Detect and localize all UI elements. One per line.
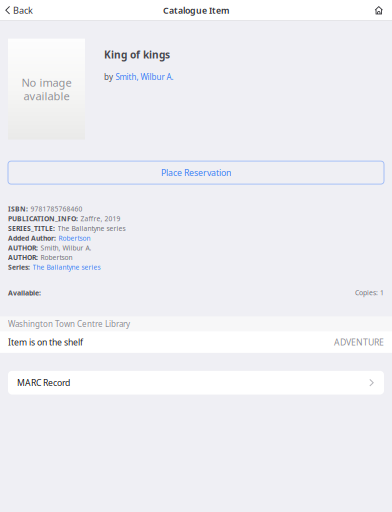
staticText: Robertson: [58, 234, 90, 243]
staticText: Catalogue Item: [163, 4, 229, 16]
staticText: by: [104, 71, 113, 82]
staticText: Smith, Wilbur A.: [40, 243, 91, 252]
staticText: PUBLICATION_INFO:: [8, 214, 78, 223]
staticText: Copies: 1: [355, 288, 384, 297]
staticText: King of kings: [104, 48, 170, 61]
staticText: Item is on the shelf: [8, 336, 83, 348]
staticText: Back: [13, 4, 33, 16]
staticText: Smith, Wilbur A.: [115, 71, 173, 82]
staticText: Added Author:: [8, 233, 56, 243]
staticText: ADVENTURE: [334, 336, 384, 348]
staticText: 9781785768460: [30, 204, 82, 214]
staticText: MARC Record: [17, 377, 70, 389]
staticText: Washington Town Centre Library: [8, 318, 130, 329]
staticText: Place Reservation: [161, 167, 231, 179]
staticText: ISBN:: [8, 204, 28, 214]
staticText: Series:: [8, 262, 30, 272]
staticText: SERIES_TITLE:: [8, 224, 55, 233]
staticText: available: [23, 88, 69, 103]
button[interactable]: Home: [369, 2, 392, 19]
staticText: AUTHOR:: [8, 243, 38, 252]
staticText: Zaffre, 2019: [80, 214, 120, 223]
staticText: AUTHOR:: [8, 253, 38, 262]
staticText: No image: [21, 75, 71, 90]
button[interactable]: Place Reservation: [0, 161, 392, 184]
button[interactable]: Back: [0, 0, 38, 20]
staticText: The Ballantyne series: [57, 224, 125, 233]
button[interactable]: Item is on the shelf: [0, 331, 392, 353]
staticText: Robertson: [40, 253, 72, 262]
button[interactable]: MARC Record: [0, 371, 392, 394]
staticText: Available:: [8, 288, 41, 297]
staticText: The Ballantyne series: [32, 263, 100, 272]
